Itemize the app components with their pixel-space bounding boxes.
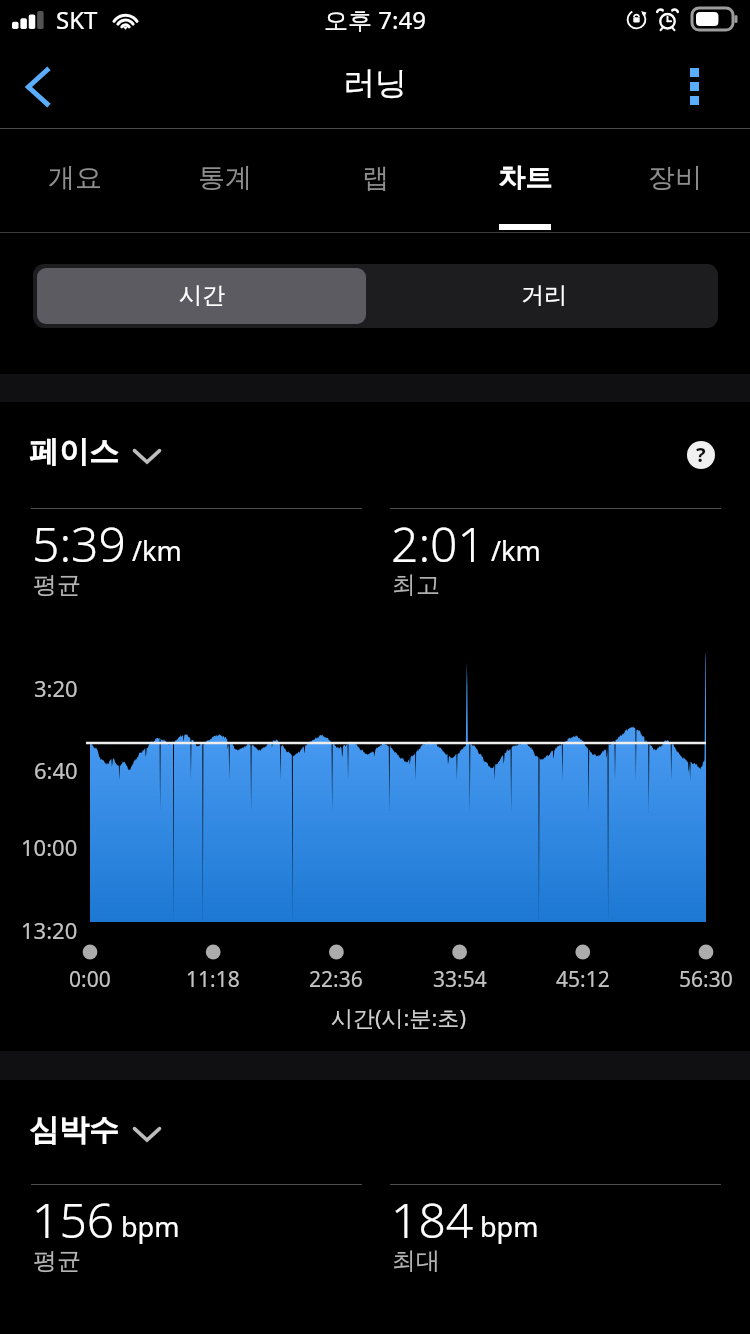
staticText: 심박수	[29, 1111, 119, 1149]
button[interactable]: 시간	[37, 268, 366, 324]
staticText: 45:12	[556, 965, 610, 994]
button[interactable]: Help	[687, 441, 715, 469]
staticText: 3:20	[34, 673, 78, 703]
staticText: 22:36	[309, 965, 363, 994]
button[interactable]: 랩	[300, 129, 450, 232]
staticText: 최대	[392, 1246, 440, 1276]
staticText: 6:40	[34, 755, 78, 785]
staticText: /km	[132, 532, 182, 569]
button[interactable]: 페이스	[29, 433, 161, 471]
staticText: ?	[696, 441, 706, 468]
staticText: 33:54	[433, 965, 487, 994]
staticText: 거리	[521, 281, 567, 310]
staticText: 평균	[33, 570, 81, 600]
staticText: SKT	[56, 3, 98, 36]
button[interactable]: 차트	[450, 129, 600, 232]
staticText: 최고	[392, 570, 440, 600]
staticText: 차트	[498, 161, 552, 195]
staticText: 56:30	[679, 965, 733, 994]
button[interactable]: 거리	[370, 264, 718, 328]
staticText: bpm	[121, 1208, 180, 1245]
button[interactable]: 심박수	[29, 1111, 161, 1149]
button[interactable]: 장비	[600, 129, 750, 232]
staticText: 장비	[648, 161, 702, 195]
staticText: 2:01	[391, 511, 485, 576]
staticText: 13:20	[21, 915, 78, 945]
staticText: bpm	[480, 1208, 539, 1245]
staticText: 랩	[362, 161, 389, 195]
staticText: /km	[491, 532, 541, 569]
staticText: 러닝	[343, 63, 407, 103]
staticText: 184	[391, 1187, 474, 1252]
staticText: 11:18	[186, 965, 240, 994]
staticText: 5:39	[32, 511, 126, 576]
staticText: 0:00	[69, 965, 111, 994]
staticText: 10:00	[21, 832, 78, 862]
staticText: 오후 7:49	[324, 3, 426, 36]
button[interactable]: 통계	[150, 129, 300, 232]
staticText: 개요	[48, 161, 102, 195]
staticText: 156	[32, 1187, 115, 1252]
staticText: 통계	[198, 161, 252, 195]
staticText: 페이스	[29, 433, 119, 471]
staticText: 시간	[179, 281, 225, 310]
button[interactable]: 개요	[0, 129, 150, 232]
staticText: 시간(시:분:초)	[331, 1002, 466, 1032]
button[interactable]: Back	[0, 44, 76, 129]
staticText: 평균	[33, 1246, 81, 1276]
button[interactable]: More options	[674, 44, 750, 129]
